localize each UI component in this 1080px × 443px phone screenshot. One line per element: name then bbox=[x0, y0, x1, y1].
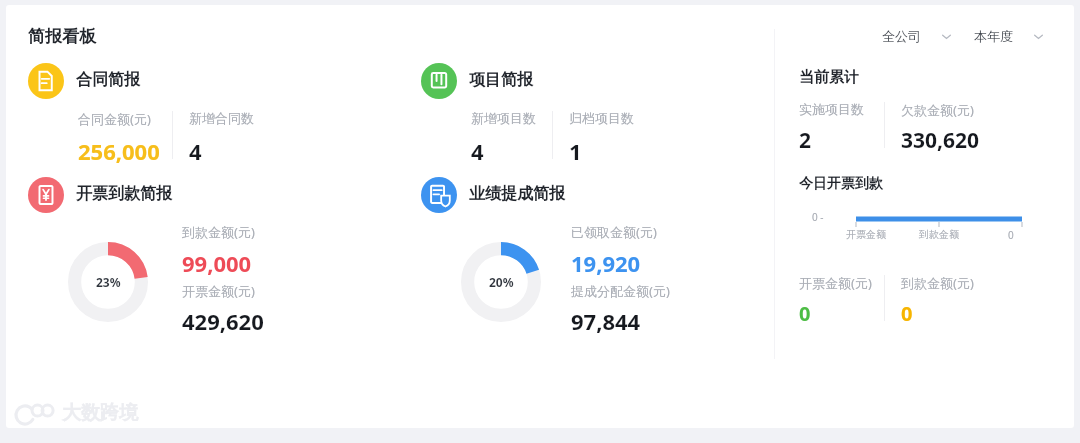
button[interactable]: 开票到款简报 bbox=[28, 177, 64, 213]
staticText: 开票金额 bbox=[846, 228, 886, 241]
staticText: 4 bbox=[471, 136, 484, 166]
staticText: 全公司 bbox=[882, 28, 921, 44]
staticText: 实施项目数 bbox=[799, 101, 864, 117]
staticText: 合同简报 bbox=[76, 70, 140, 90]
staticText: 99,000 bbox=[182, 248, 252, 278]
staticText: 简报看板 bbox=[28, 26, 96, 47]
staticText: 当前累计 bbox=[799, 68, 859, 87]
staticText: 归档项目数 bbox=[569, 110, 634, 126]
staticText: 新增合同数 bbox=[189, 110, 254, 126]
staticText: 已领取金额(元) bbox=[571, 223, 657, 241]
staticText: 到款金额 bbox=[919, 228, 959, 241]
staticText: 合同金额(元) bbox=[78, 110, 151, 128]
staticText: 本年度 bbox=[974, 28, 1013, 44]
staticText: 2 bbox=[799, 126, 812, 155]
staticText: 1 bbox=[569, 136, 582, 166]
staticText: 新增项目数 bbox=[471, 110, 536, 126]
staticText: 97,844 bbox=[571, 306, 641, 336]
button[interactable]: 项目简报 bbox=[421, 63, 457, 99]
staticText: 23% bbox=[96, 274, 121, 290]
staticText: 4 bbox=[189, 136, 202, 166]
button[interactable]: 本年度 bbox=[974, 25, 1044, 47]
staticText: 提成分配金额(元) bbox=[571, 282, 670, 300]
staticText: 开票到款简报 bbox=[76, 184, 172, 204]
staticText: 项目简报 bbox=[469, 70, 533, 90]
staticText: 开票金额(元) bbox=[799, 274, 872, 292]
staticText: 429,620 bbox=[182, 306, 264, 336]
staticText: 330,620 bbox=[901, 126, 980, 155]
staticText: 0 bbox=[799, 300, 811, 327]
staticText: 19,920 bbox=[571, 248, 641, 278]
button[interactable]: 合同简报 bbox=[28, 63, 64, 99]
staticText: 业绩提成简报 bbox=[469, 184, 565, 204]
staticText: 今日开票到款 bbox=[799, 175, 883, 193]
staticText: 大数跨境 bbox=[62, 401, 138, 425]
staticText: 256,000 bbox=[78, 136, 160, 166]
staticText: 到款金额(元) bbox=[182, 223, 255, 241]
staticText: 开票金额(元) bbox=[182, 282, 255, 300]
button[interactable]: 全公司 bbox=[882, 25, 952, 47]
staticText: 欠款金额(元) bbox=[901, 101, 974, 119]
staticText: 0 bbox=[901, 300, 913, 327]
staticText: 20% bbox=[489, 274, 514, 290]
staticText: 到款金额(元) bbox=[901, 274, 974, 292]
staticText: 0 bbox=[1008, 228, 1014, 242]
staticText: 0 - bbox=[812, 210, 824, 224]
button[interactable]: 业绩提成简报 bbox=[421, 177, 457, 213]
